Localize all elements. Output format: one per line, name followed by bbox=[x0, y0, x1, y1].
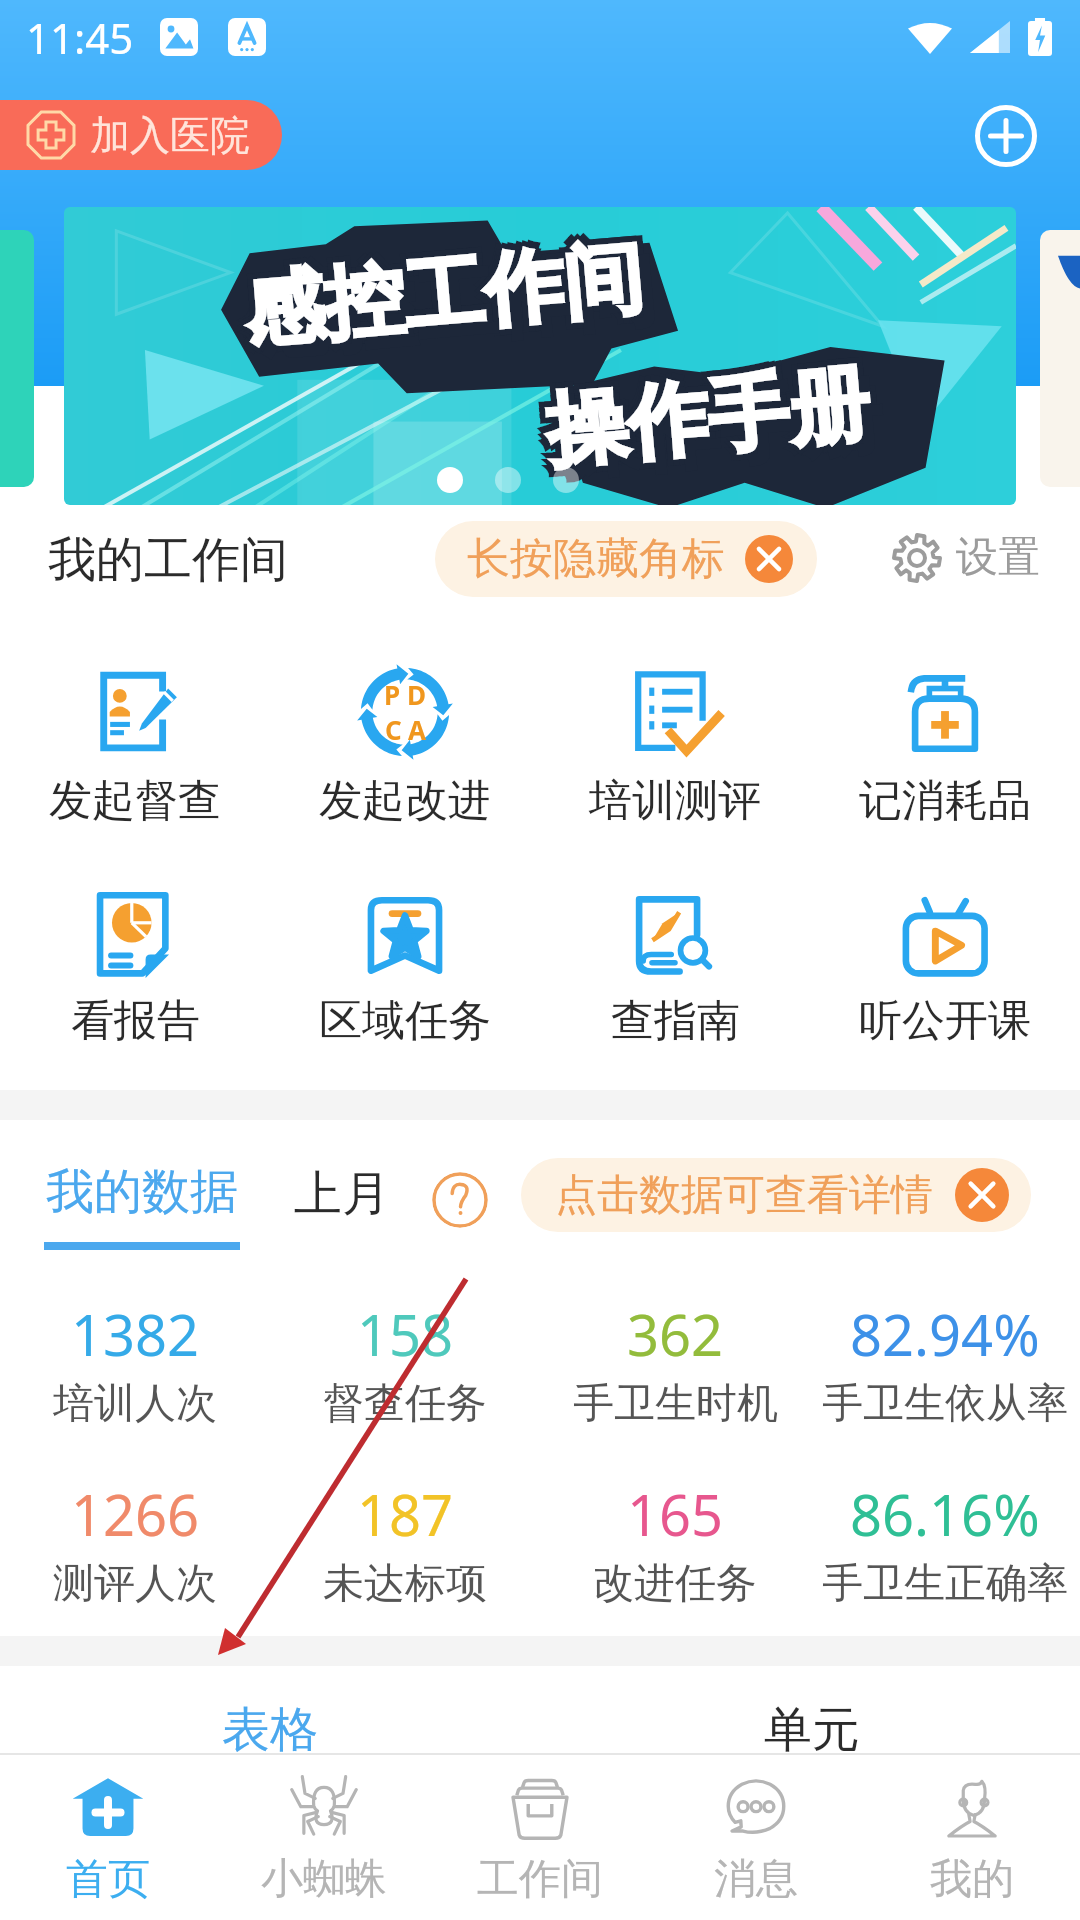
staticText: 区域任务 bbox=[319, 994, 491, 1048]
staticText: 加入医院 bbox=[90, 110, 250, 160]
button[interactable]: 设置 bbox=[892, 531, 1040, 584]
staticText: 首页 bbox=[66, 1853, 150, 1906]
staticText: 查指南 bbox=[611, 994, 740, 1048]
staticText: 感控工作间 bbox=[240, 228, 648, 363]
button[interactable]: 点击数据可查看详情 bbox=[521, 1158, 1031, 1232]
button[interactable]: 1382 bbox=[0, 1296, 270, 1430]
button[interactable]: 我的工作间 bbox=[48, 530, 288, 590]
button[interactable]: 上月 bbox=[294, 1164, 390, 1224]
staticText: 感控工作间 bbox=[235, 234, 642, 370]
button[interactable]: 表格 bbox=[222, 1700, 318, 1760]
staticText: 操作手册 bbox=[537, 360, 868, 489]
staticText: 手卫生正确率 bbox=[822, 1558, 1068, 1610]
staticText: 未达标项 bbox=[323, 1558, 487, 1610]
staticText: 改进任务 bbox=[593, 1558, 757, 1610]
button[interactable]: 单元 bbox=[764, 1700, 860, 1760]
staticText: 手卫生依从率 bbox=[822, 1378, 1068, 1430]
staticText: 听公开课 bbox=[859, 994, 1031, 1048]
button[interactable]: 听公开课 bbox=[810, 886, 1080, 1048]
button[interactable]: 感控工作间 bbox=[64, 207, 1016, 505]
staticText: 感控工作间 bbox=[252, 240, 660, 375]
button[interactable]: 82.94% bbox=[810, 1296, 1080, 1430]
button[interactable]: 看报告 bbox=[0, 886, 270, 1048]
staticText: 感控工作间 bbox=[234, 222, 641, 358]
staticText: 培训测评 bbox=[589, 774, 761, 828]
button[interactable]: Add bbox=[974, 104, 1038, 168]
staticText: 点击数据可查看详情 bbox=[555, 1169, 933, 1222]
button[interactable]: 362 bbox=[540, 1296, 810, 1430]
staticText: 督查任务 bbox=[323, 1378, 487, 1430]
staticText: 362 bbox=[627, 1296, 724, 1372]
staticText: C bbox=[385, 712, 402, 747]
button[interactable]: 我的数据 bbox=[44, 1162, 240, 1250]
button[interactable]: 187 bbox=[270, 1476, 540, 1610]
button[interactable]: 区域任务 bbox=[270, 886, 540, 1048]
button[interactable]: 加入医院 bbox=[0, 100, 282, 170]
staticText: 感控工作间 bbox=[246, 227, 654, 363]
staticText: 操作手册 bbox=[536, 354, 868, 483]
staticText: 感控工作间 bbox=[247, 233, 654, 369]
staticText: 操作手册 bbox=[549, 358, 880, 488]
button[interactable]: P bbox=[270, 666, 540, 828]
staticText: 操作手册 bbox=[548, 347, 879, 476]
staticText: 11:45 bbox=[26, 9, 134, 66]
button[interactable]: 158 bbox=[270, 1296, 540, 1430]
button[interactable]: 165 bbox=[540, 1476, 810, 1610]
button[interactable]: 我的 bbox=[864, 1755, 1080, 1920]
button[interactable]: 长按隐藏角标 bbox=[435, 521, 817, 597]
button[interactable]: 培训测评 bbox=[540, 666, 810, 828]
button[interactable]: 消息 bbox=[648, 1755, 864, 1920]
staticText: 操作手册 bbox=[536, 348, 867, 477]
staticText: 158 bbox=[357, 1296, 454, 1372]
staticText: 我的数据 bbox=[46, 1162, 238, 1222]
button[interactable]: 小蜘蛛 bbox=[216, 1755, 432, 1920]
button[interactable]: 1266 bbox=[0, 1476, 270, 1610]
staticText: 感控工作间 bbox=[240, 222, 647, 357]
staticText: A bbox=[408, 712, 426, 747]
staticText: 82.94% bbox=[850, 1296, 1040, 1372]
staticText: 感控工作间 bbox=[246, 221, 653, 357]
button[interactable]: 首页 bbox=[0, 1755, 216, 1920]
staticText: 测评人次 bbox=[53, 1558, 217, 1610]
staticText: 工作间 bbox=[477, 1853, 603, 1906]
staticText: 长按隐藏角标 bbox=[467, 532, 725, 586]
button[interactable]: 86.16% bbox=[810, 1476, 1080, 1610]
staticText: 我的 bbox=[930, 1853, 1014, 1906]
staticText: 发起督查 bbox=[49, 774, 221, 828]
staticText: 86.16% bbox=[850, 1476, 1040, 1552]
staticText: 培训人次 bbox=[53, 1378, 217, 1430]
staticText: 发起改进 bbox=[319, 774, 491, 828]
staticText: 操作手册 bbox=[542, 347, 873, 477]
staticText: 看报告 bbox=[71, 994, 200, 1048]
staticText: 小蜘蛛 bbox=[261, 1853, 387, 1906]
button[interactable]: 记消耗品 bbox=[810, 666, 1080, 828]
button[interactable]: 发起督查 bbox=[0, 666, 270, 828]
button[interactable]: 查指南 bbox=[540, 886, 810, 1048]
staticText: 感控工作间 bbox=[241, 234, 648, 369]
staticText: 操作手册 bbox=[543, 359, 874, 489]
staticText: 手卫生时机 bbox=[573, 1378, 778, 1430]
staticText: 1382 bbox=[71, 1296, 200, 1372]
staticText: 感控工作间 bbox=[234, 228, 642, 364]
staticText: P bbox=[384, 677, 401, 712]
staticText: 操作手册 bbox=[542, 353, 874, 483]
button[interactable]: 工作间 bbox=[432, 1755, 648, 1920]
staticText: 操作手册 bbox=[554, 365, 886, 495]
staticText: 1266 bbox=[71, 1476, 200, 1552]
staticText: 187 bbox=[357, 1476, 454, 1552]
staticText: 记消耗品 bbox=[859, 774, 1031, 828]
staticText: 165 bbox=[627, 1476, 724, 1552]
staticText: 消息 bbox=[714, 1853, 798, 1906]
staticText: 操作手册 bbox=[548, 353, 880, 482]
staticText: D bbox=[407, 677, 427, 712]
button[interactable]: Help bbox=[432, 1172, 488, 1228]
staticText: 设置 bbox=[956, 531, 1040, 584]
